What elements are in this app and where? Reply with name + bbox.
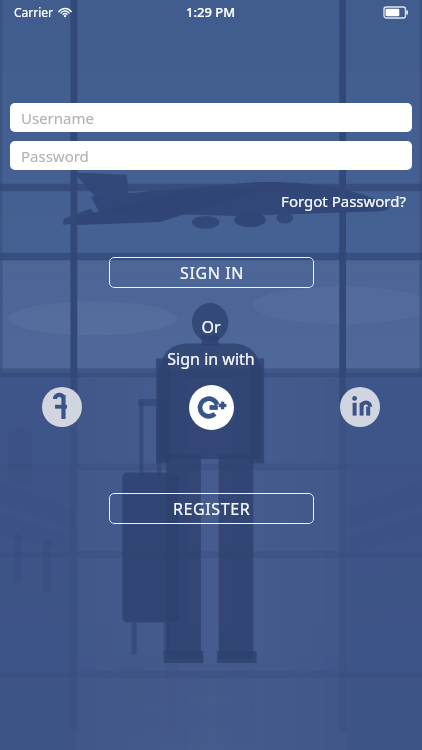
button[interactable]: Sign in with LinkedIn bbox=[340, 387, 380, 427]
button[interactable]: Password bbox=[10, 141, 412, 170]
button[interactable]: Sign in with Facebook bbox=[42, 387, 82, 427]
staticText: SIGN IN bbox=[180, 262, 244, 284]
button[interactable]: REGISTER bbox=[109, 493, 314, 524]
button[interactable]: Username bbox=[10, 103, 412, 132]
button[interactable]: Sign in with Google bbox=[189, 385, 234, 430]
staticText: REGISTER bbox=[173, 498, 251, 520]
staticText: Or bbox=[0, 316, 422, 338]
staticText: Username bbox=[21, 108, 94, 128]
staticText: Sign in with bbox=[0, 348, 422, 370]
button[interactable]: Forgot Password? bbox=[0, 191, 422, 211]
staticText: Carrier bbox=[14, 4, 54, 20]
staticText: Password bbox=[21, 146, 89, 166]
staticText: 1:29 PM bbox=[186, 3, 236, 21]
button[interactable]: SIGN IN bbox=[109, 257, 314, 288]
